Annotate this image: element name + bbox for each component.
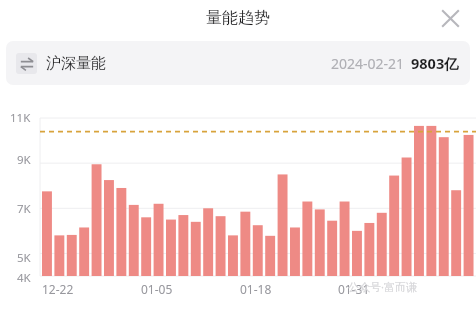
staticText: 量能趋势	[206, 8, 270, 28]
button[interactable]: 沪深量能	[6, 41, 470, 85]
staticText: 01-05	[141, 281, 173, 297]
button[interactable]: Close	[433, 1, 467, 35]
staticText: 公众号·富而谦	[348, 279, 417, 294]
staticText: 9K	[17, 152, 31, 168]
staticText: 沪深量能	[46, 54, 106, 73]
staticText: 9803亿	[411, 53, 459, 73]
staticText: 12-22	[42, 281, 74, 297]
staticText: 5K	[17, 250, 31, 266]
staticText: 01-31	[338, 281, 370, 297]
staticText: 2024-02-21	[331, 54, 405, 73]
staticText: 01-18	[240, 281, 272, 297]
staticText: 11K	[10, 110, 31, 126]
staticText: 4K	[17, 270, 31, 286]
staticText: 7K	[17, 201, 31, 217]
